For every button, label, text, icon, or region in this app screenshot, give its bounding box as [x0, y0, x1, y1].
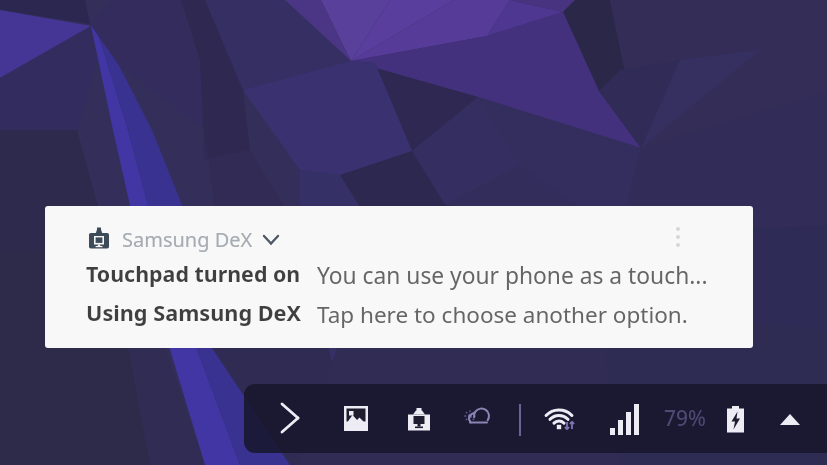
staticText: Using Samsung DeX	[86, 298, 302, 328]
button[interactable]: Open app drawer	[276, 398, 310, 440]
button[interactable]: Samsung DeX	[405, 405, 433, 433]
button[interactable]: Expand notification	[258, 226, 284, 252]
staticText: Touchpad turned on	[86, 259, 301, 288]
button[interactable]: Show hidden icons	[776, 406, 804, 432]
button[interactable]: Gallery	[341, 403, 371, 433]
button[interactable]: Weather	[462, 404, 498, 436]
staticText: You can use your phone as a touch...	[317, 260, 708, 291]
button[interactable]: Battery charging	[724, 404, 750, 436]
button[interactable]: Samsung DeX	[45, 206, 753, 348]
staticText: Tap here to choose another option.	[317, 299, 688, 330]
staticText: Samsung DeX	[122, 226, 253, 253]
button[interactable]: Mobile signal	[608, 400, 642, 440]
button[interactable]: Wi-Fi	[539, 400, 583, 434]
staticText: 79%	[664, 404, 706, 433]
button[interactable]: More options	[666, 224, 690, 252]
